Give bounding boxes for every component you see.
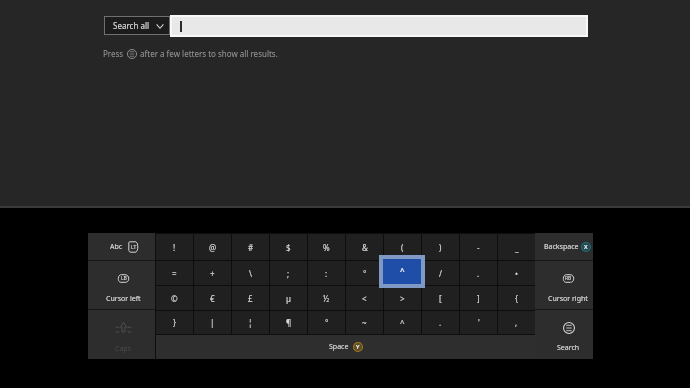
staticText: . — [477, 268, 480, 279]
staticText: Cursor left — [106, 294, 141, 304]
button[interactable]: Cursor left — [88, 261, 155, 309]
button[interactable]: | — [194, 311, 231, 334]
button[interactable]: @ — [194, 234, 231, 260]
button[interactable]: ] — [460, 286, 497, 310]
button[interactable]: & — [346, 234, 383, 260]
staticText: } — [173, 317, 177, 328]
staticText: ^ — [400, 317, 405, 328]
button[interactable]: < — [346, 286, 383, 310]
staticText: - — [477, 242, 480, 253]
button[interactable]: Space — [156, 335, 535, 359]
button[interactable]: \ — [232, 261, 269, 285]
staticText: Backspace — [544, 242, 579, 252]
button[interactable]: % — [308, 234, 345, 260]
button[interactable]: $ — [270, 234, 307, 260]
staticText: LB — [121, 275, 127, 282]
staticText: : — [325, 268, 328, 279]
staticText: Cursor right — [548, 294, 588, 304]
button[interactable]: ^ — [384, 261, 421, 285]
staticText: \ — [249, 268, 252, 279]
button[interactable]: ¶ — [270, 311, 307, 334]
staticText: ~ — [362, 317, 367, 328]
button[interactable]: ½ — [308, 286, 345, 310]
button[interactable]: • — [498, 261, 535, 285]
button[interactable]: : — [308, 261, 345, 285]
button[interactable]: + — [194, 261, 231, 285]
button[interactable]: ; — [270, 261, 307, 285]
staticText: RB — [565, 275, 572, 282]
button[interactable]: . — [460, 261, 497, 285]
staticText: [ — [439, 293, 442, 304]
button[interactable]: £ — [232, 286, 269, 310]
staticText: ¦ — [248, 317, 253, 328]
staticText: $ — [286, 242, 291, 253]
staticText: µ — [286, 293, 291, 304]
button[interactable]: ° — [346, 261, 383, 285]
staticText: Caps — [115, 344, 132, 354]
staticText: > — [400, 293, 405, 304]
staticText: • — [515, 268, 519, 279]
button[interactable]: ~ — [346, 311, 383, 334]
staticText: ^ — [400, 268, 405, 279]
staticText: © — [171, 293, 178, 304]
staticText: Press — [103, 48, 124, 59]
staticText: X — [584, 243, 588, 251]
staticText: ! — [173, 242, 176, 253]
button[interactable]: , — [498, 311, 535, 334]
staticText: ] — [477, 293, 480, 304]
staticText: Search all — [113, 20, 150, 31]
staticText: + — [210, 268, 215, 279]
staticText: Abc — [110, 242, 123, 252]
button[interactable]: ' — [460, 311, 497, 334]
staticText: ° — [363, 268, 367, 279]
button[interactable]: } — [156, 311, 193, 334]
button[interactable]: ( — [384, 234, 421, 260]
button[interactable]: µ — [270, 286, 307, 310]
button[interactable]: Caps — [88, 310, 155, 359]
button[interactable]: Backspace — [535, 233, 593, 260]
button[interactable]: { — [498, 286, 535, 310]
staticText: # — [248, 242, 254, 253]
staticText: Space — [329, 342, 349, 352]
button[interactable]: Search — [535, 310, 593, 359]
button[interactable]: = — [156, 261, 193, 285]
staticText: ' — [478, 317, 480, 328]
button[interactable]: _ — [498, 234, 535, 260]
staticText: . — [439, 317, 442, 328]
button[interactable]: Search text field — [172, 17, 586, 35]
button[interactable]: ! — [156, 234, 193, 260]
button[interactable]: ¦ — [232, 311, 269, 334]
staticText: ( — [401, 242, 404, 253]
button[interactable]: ^ — [384, 311, 421, 334]
button[interactable]: ° — [308, 311, 345, 334]
button[interactable]: Cursor right — [535, 261, 593, 309]
staticText: | — [210, 317, 215, 328]
staticText: LT — [131, 244, 137, 251]
staticText: % — [323, 242, 330, 253]
button[interactable]: ^ — [383, 259, 421, 284]
staticText: ½ — [323, 293, 330, 304]
staticText: { — [515, 293, 519, 304]
button[interactable]: > — [384, 286, 421, 310]
staticText: < — [362, 293, 367, 304]
button[interactable]: € — [194, 286, 231, 310]
button[interactable]: Search all — [104, 16, 170, 35]
button[interactable]: [ — [422, 286, 459, 310]
staticText: ) — [439, 242, 442, 253]
staticText: , — [515, 317, 518, 328]
button[interactable]: . — [422, 311, 459, 334]
staticText: Search — [557, 343, 580, 353]
button[interactable]: / — [422, 261, 459, 285]
button[interactable]: # — [232, 234, 269, 260]
button[interactable]: - — [460, 234, 497, 260]
staticText: & — [362, 242, 368, 253]
staticText: _ — [515, 242, 519, 253]
button[interactable]: Switch to Abc keyboard — [88, 233, 155, 260]
staticText: @ — [209, 242, 217, 253]
button[interactable]: ) — [422, 234, 459, 260]
staticText: ^ — [400, 265, 405, 276]
button[interactable]: © — [156, 286, 193, 310]
staticText: after a few letters to show all results. — [140, 48, 278, 59]
staticText: ; — [287, 268, 290, 279]
staticText: / — [439, 268, 442, 279]
